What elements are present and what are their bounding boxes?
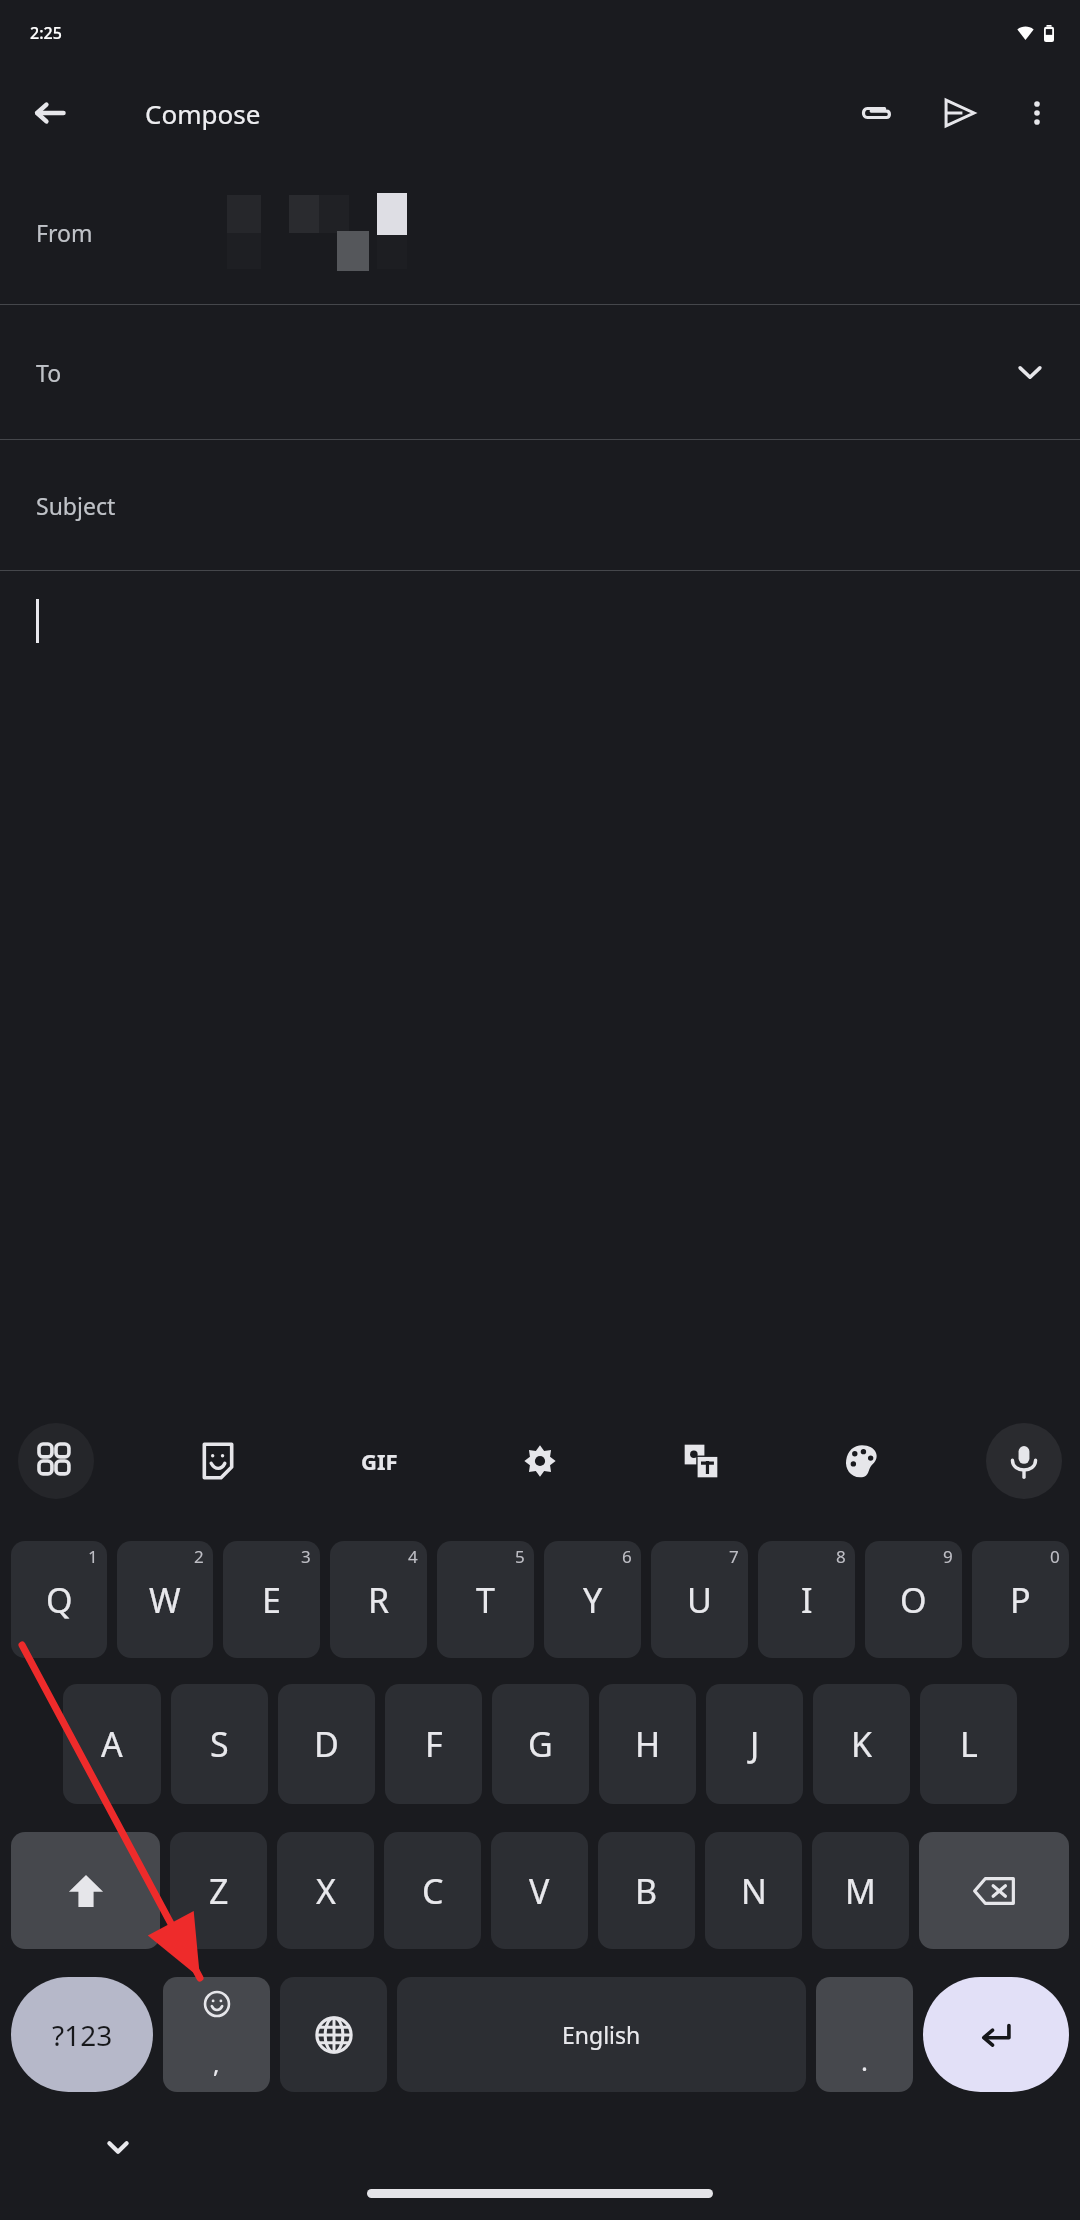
button[interactable]: To: [0, 305, 1080, 439]
button[interactable]: Change language: [280, 1977, 387, 2092]
button[interactable]: J: [706, 1684, 803, 1804]
staticText: L: [960, 1721, 978, 1767]
staticText: I: [801, 1577, 813, 1623]
button[interactable]: Hide keyboard: [95, 2124, 141, 2170]
button[interactable]: E: [223, 1541, 320, 1658]
button[interactable]: N: [705, 1832, 802, 1949]
staticText: N: [741, 1868, 767, 1914]
staticText: M: [845, 1868, 876, 1914]
staticText: 1: [88, 1545, 98, 1568]
staticText: U: [687, 1577, 712, 1623]
button[interactable]: F: [385, 1684, 482, 1804]
button[interactable]: ?123: [11, 1977, 153, 2092]
staticText: A: [101, 1721, 123, 1767]
staticText: B: [635, 1868, 658, 1914]
staticText: Compose: [145, 96, 261, 131]
staticText: GIF: [361, 1446, 398, 1476]
staticText: 0: [1050, 1545, 1060, 1568]
button[interactable]: Emoji and comma: [163, 1977, 270, 2092]
staticText: R: [368, 1577, 390, 1623]
button[interactable]: Enter: [923, 1977, 1069, 2092]
staticText: 2:25: [30, 22, 62, 44]
staticText: T: [476, 1577, 495, 1623]
staticText: E: [262, 1577, 281, 1623]
button[interactable]: Open features menu: [18, 1423, 94, 1499]
button[interactable]: X: [277, 1832, 374, 1949]
button[interactable]: Translate: [664, 1424, 738, 1498]
staticText: S: [210, 1721, 229, 1767]
button[interactable]: From: [0, 160, 1080, 304]
button[interactable]: Backspace: [919, 1832, 1069, 1949]
button[interactable]: Y: [544, 1541, 641, 1658]
button[interactable]: T: [437, 1541, 534, 1658]
staticText: D: [314, 1721, 339, 1767]
staticText: 3: [301, 1545, 311, 1568]
button[interactable]: Attach: [846, 84, 904, 142]
button[interactable]: S: [171, 1684, 268, 1804]
button[interactable]: Settings: [503, 1424, 577, 1498]
button[interactable]: R: [330, 1541, 427, 1658]
button[interactable]: O: [865, 1541, 962, 1658]
staticText: W: [149, 1577, 181, 1623]
button[interactable]: B: [598, 1832, 695, 1949]
button[interactable]: Stickers: [181, 1424, 255, 1498]
button[interactable]: V: [491, 1832, 588, 1949]
staticText: V: [529, 1868, 550, 1914]
staticText: 4: [408, 1545, 418, 1568]
staticText: Q: [46, 1577, 73, 1623]
button[interactable]: I: [758, 1541, 855, 1658]
button[interactable]: W: [117, 1541, 213, 1658]
staticText: K: [851, 1721, 873, 1767]
button[interactable]: Send: [930, 84, 988, 142]
button[interactable]: G: [492, 1684, 589, 1804]
button[interactable]: H: [599, 1684, 696, 1804]
button[interactable]: Q: [11, 1541, 107, 1658]
button[interactable]: Subject: [0, 440, 1080, 570]
button[interactable]: C: [384, 1832, 481, 1949]
staticText: X: [316, 1868, 336, 1914]
staticText: From: [36, 217, 93, 248]
staticText: Subject: [36, 490, 116, 521]
button[interactable]: P: [972, 1541, 1069, 1658]
button[interactable]: Back: [22, 85, 78, 141]
staticText: H: [635, 1721, 661, 1767]
button[interactable]: Z: [170, 1832, 267, 1949]
staticText: .: [861, 2043, 868, 2078]
button[interactable]: M: [812, 1832, 909, 1949]
staticText: 7: [729, 1545, 739, 1568]
staticText: 6: [622, 1545, 632, 1568]
staticText: C: [422, 1868, 444, 1914]
button[interactable]: A: [63, 1684, 161, 1804]
button[interactable]: Themes: [825, 1424, 899, 1498]
button[interactable]: .: [816, 1977, 913, 2092]
staticText: ?123: [52, 2016, 113, 2054]
staticText: G: [528, 1721, 553, 1767]
staticText: ,: [213, 2047, 220, 2080]
button[interactable]: More options: [1008, 84, 1066, 142]
staticText: Z: [209, 1868, 229, 1914]
staticText: English: [562, 2019, 641, 2050]
staticText: P: [1010, 1577, 1031, 1623]
staticText: To: [36, 357, 62, 388]
staticText: F: [425, 1721, 443, 1767]
button[interactable]: K: [813, 1684, 910, 1804]
button[interactable]: GIF: [342, 1424, 416, 1498]
staticText: J: [750, 1721, 760, 1767]
button[interactable]: Voice input: [986, 1423, 1062, 1499]
button[interactable]: U: [651, 1541, 748, 1658]
staticText: 2: [194, 1545, 204, 1568]
staticText: 5: [515, 1545, 525, 1568]
button[interactable]: Shift: [11, 1832, 160, 1949]
button[interactable]: L: [920, 1684, 1017, 1804]
staticText: Y: [583, 1577, 603, 1623]
staticText: 9: [943, 1545, 953, 1568]
staticText: 8: [836, 1545, 846, 1568]
button[interactable]: English: [397, 1977, 806, 2092]
staticText: O: [900, 1577, 927, 1623]
button[interactable]: D: [278, 1684, 375, 1804]
button[interactable]: Expand recipients: [1000, 342, 1060, 402]
